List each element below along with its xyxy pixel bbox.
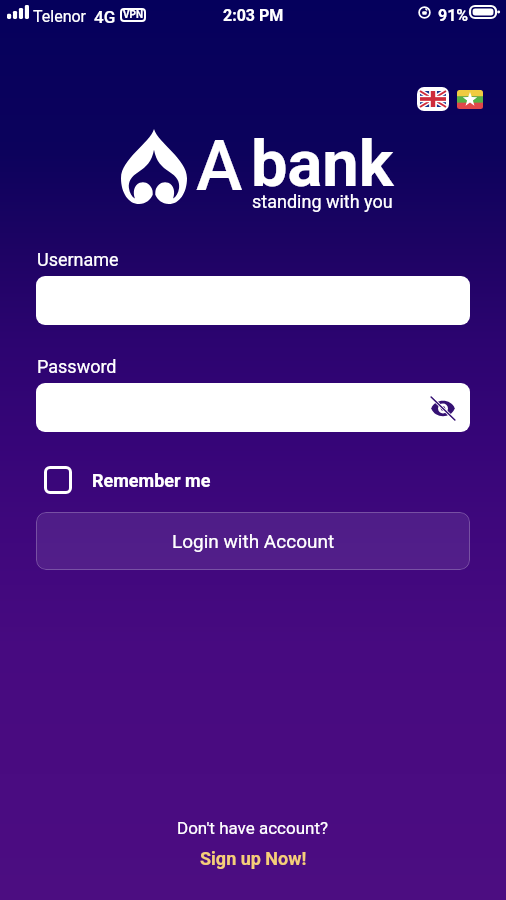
staticText: 2:03 PM bbox=[223, 6, 284, 25]
staticText: standing with you bbox=[252, 191, 393, 212]
staticText: A bbox=[196, 125, 243, 207]
staticText: 4G bbox=[94, 7, 116, 27]
button[interactable]: Show password bbox=[426, 391, 460, 425]
button[interactable]: Login with Account bbox=[36, 512, 470, 570]
button[interactable] bbox=[36, 276, 470, 325]
button[interactable]: Myanmar language bbox=[457, 90, 483, 109]
staticText: Login with Account bbox=[172, 530, 335, 552]
staticText: Telenor bbox=[33, 7, 87, 26]
button[interactable]: Sign up Now! bbox=[200, 848, 307, 869]
button[interactable]: English language bbox=[417, 87, 449, 111]
button[interactable]: Show password bbox=[36, 383, 470, 432]
staticText: Password bbox=[37, 356, 117, 377]
staticText: bank bbox=[251, 126, 394, 202]
staticText: Don't have account? bbox=[177, 818, 329, 838]
staticText: Sign up Now! bbox=[200, 848, 307, 869]
staticText: Remember me bbox=[92, 470, 211, 491]
staticText: Username bbox=[37, 249, 119, 270]
button[interactable]: Remember me bbox=[44, 465, 211, 495]
staticText: VPN bbox=[123, 9, 144, 21]
staticText: 91% bbox=[438, 6, 469, 25]
